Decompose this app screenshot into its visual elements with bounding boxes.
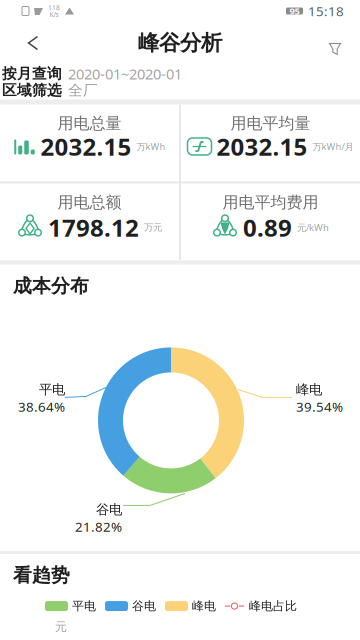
staticText: 平电 xyxy=(72,599,96,613)
staticText: 15:18 xyxy=(308,2,344,20)
staticText: 元 xyxy=(55,619,67,634)
staticText: K/s xyxy=(49,10,58,19)
staticText: 2032.15 xyxy=(216,131,307,162)
staticText: 峰谷分析 xyxy=(138,30,222,56)
staticText: 95 xyxy=(289,5,299,17)
staticText: 39.54% xyxy=(296,398,343,415)
staticText: 峰电 xyxy=(192,599,216,613)
staticText: 38.64% xyxy=(18,398,65,415)
button[interactable]: 返回 xyxy=(12,29,40,57)
staticText: 按月查询 xyxy=(2,65,62,83)
staticText: 看趋势 xyxy=(13,564,70,587)
staticText: 万元 xyxy=(144,222,162,233)
staticText: 1798.12 xyxy=(48,212,139,243)
staticText: 全厂 xyxy=(68,81,98,99)
staticText: 元/kWh xyxy=(297,221,329,234)
staticText: 21.82% xyxy=(75,518,122,535)
staticText: 0.89 xyxy=(243,212,292,243)
staticText: 用电平均量 xyxy=(230,114,310,133)
staticText: 用电平均费用 xyxy=(222,193,318,212)
staticText: 区域筛选 xyxy=(2,81,62,99)
staticText: 2032.15 xyxy=(40,131,131,162)
staticText: 谷电 xyxy=(96,501,122,518)
staticText: 2020-01~2020-01 xyxy=(68,64,182,83)
staticText: 用电总额 xyxy=(57,193,121,212)
staticText: 谷电 xyxy=(132,599,156,613)
staticText: 118 xyxy=(48,3,60,12)
staticText: 万kWh xyxy=(136,140,165,153)
button[interactable]: 区域筛选 xyxy=(2,81,360,99)
staticText: 用电总量 xyxy=(57,114,121,133)
staticText: 峰电占比 xyxy=(249,599,297,613)
staticText: 成本分布 xyxy=(13,274,89,297)
staticText: 万kWh/月 xyxy=(312,140,353,153)
staticText: 峰电 xyxy=(296,381,322,398)
staticText: 平电 xyxy=(39,381,65,398)
button[interactable]: 按月查询 xyxy=(2,64,360,83)
button[interactable]: 筛选 xyxy=(322,30,348,56)
